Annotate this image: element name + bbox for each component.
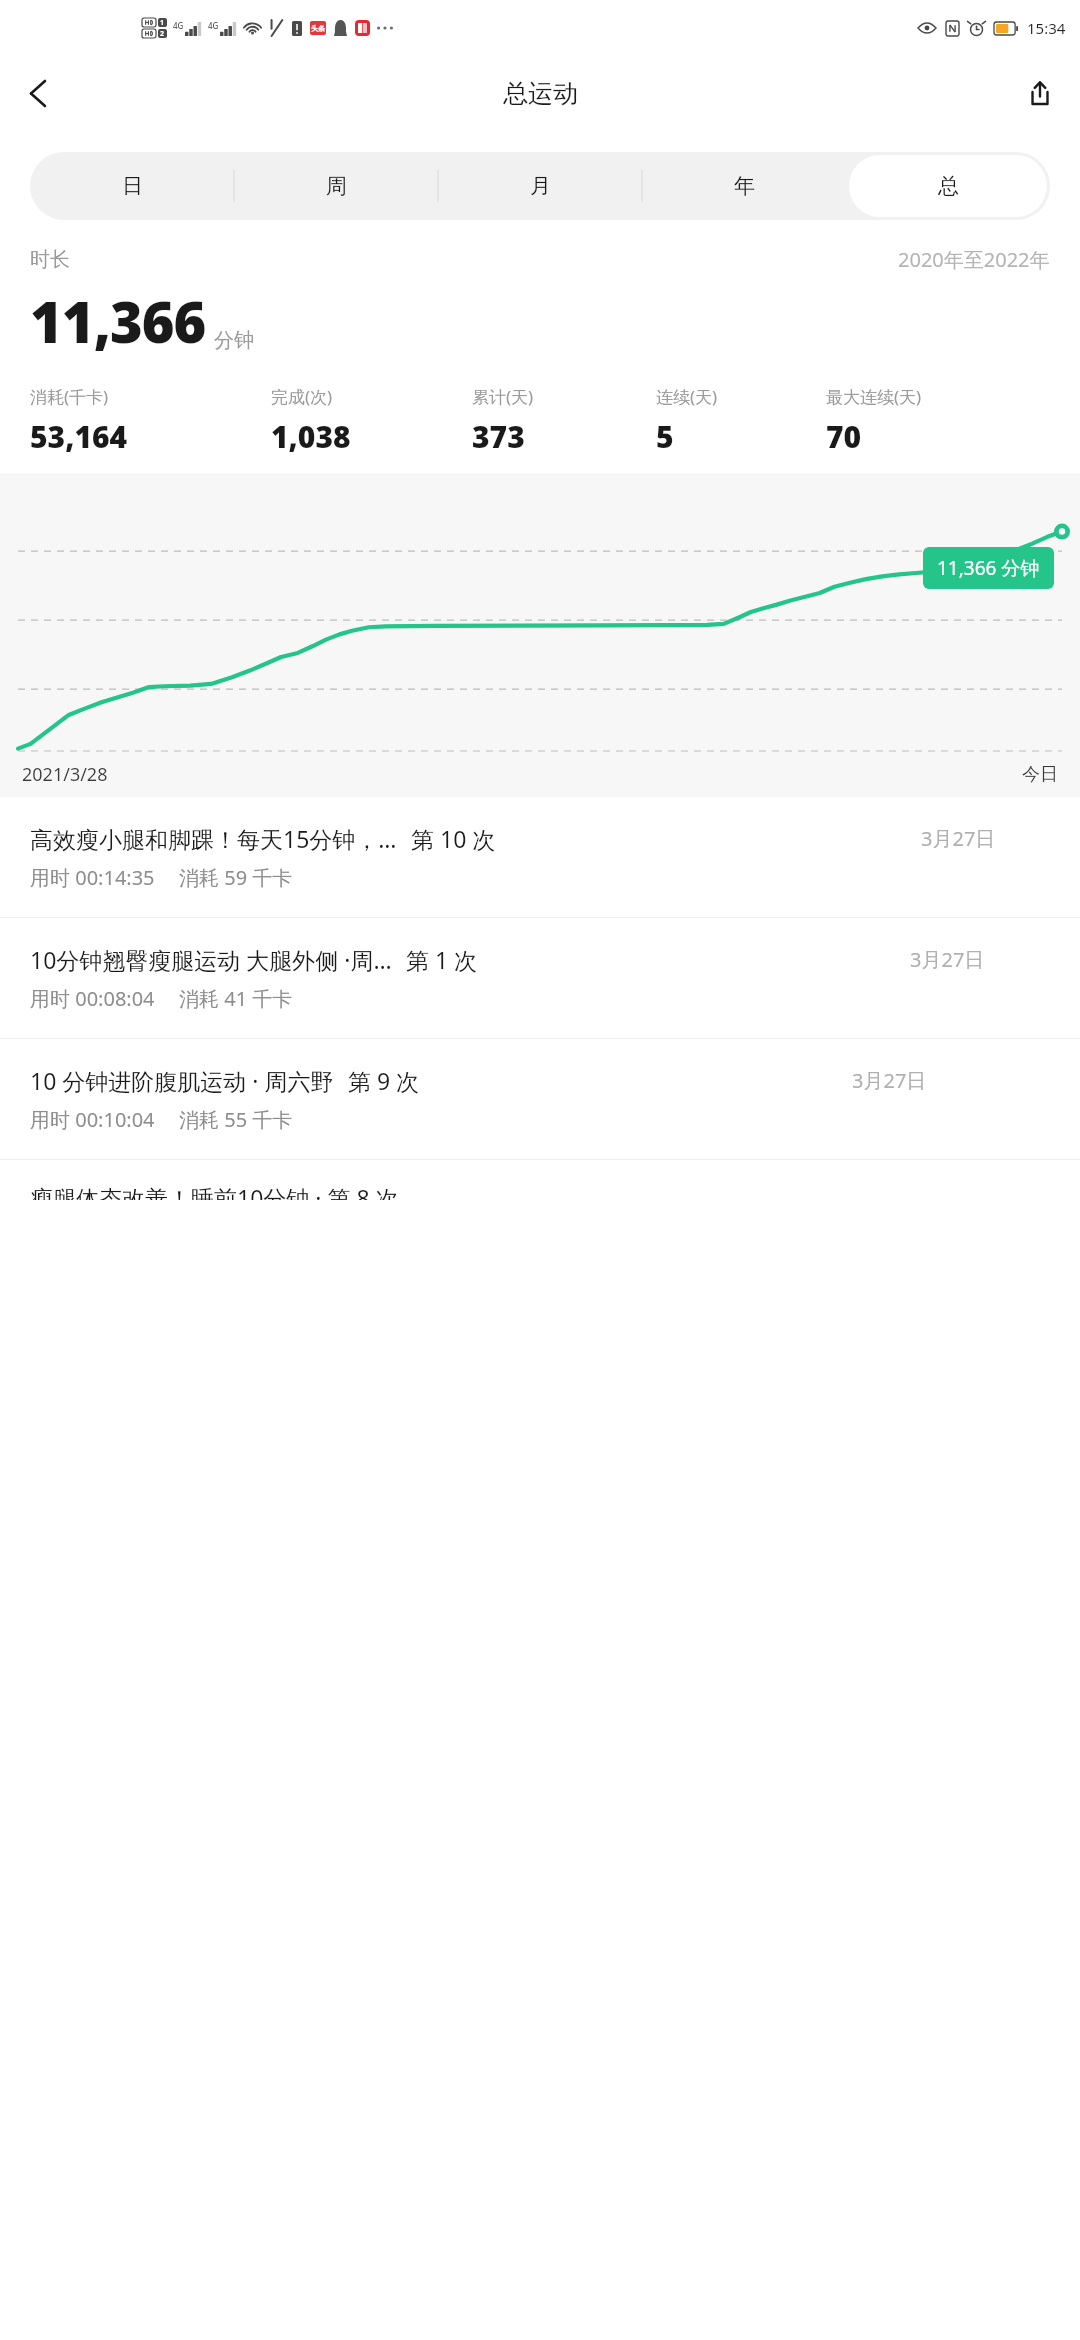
staticText: 时长 [30, 247, 70, 272]
button[interactable]: 总 [849, 155, 1047, 217]
staticText: 15:34 [1027, 18, 1066, 38]
staticText: 第 1 次 [406, 944, 478, 975]
button[interactable]: 周 [237, 155, 435, 217]
staticText: 1,038 [271, 416, 351, 457]
button[interactable]: 高效瘦小腿和脚踝！每天15分钟，… [0, 797, 1080, 917]
button[interactable]: Back [12, 67, 64, 119]
staticText: 4G [173, 20, 184, 31]
staticText: 3月27日 [852, 1067, 927, 1094]
staticText: 2021/3/28 [22, 762, 108, 787]
staticText: 11,366 分钟 [937, 555, 1040, 581]
staticText: 消耗 41 千卡 [179, 985, 293, 1012]
button[interactable]: 10 分钟进阶腹肌运动 · 周六野 [0, 1039, 1080, 1159]
staticText: 日 [122, 173, 143, 199]
button[interactable]: 10分钟翘臀瘦腿运动 大腿外侧 ·周… [0, 918, 1080, 1038]
staticText: 最大连续(天) [826, 385, 922, 408]
staticText: 总 [938, 173, 959, 199]
staticText: 4G [208, 20, 219, 31]
staticText: 消耗 55 千卡 [179, 1106, 293, 1133]
staticText: 累计(天) [472, 385, 534, 408]
staticText: 连续(天) [656, 385, 718, 408]
staticText: 2 [160, 29, 165, 38]
staticText: 总运动 [503, 78, 578, 109]
button[interactable]: 年 [645, 155, 843, 217]
staticText: 高效瘦小腿和脚踝！每天15分钟，… [30, 823, 397, 854]
staticText: 1 [160, 18, 165, 27]
staticText: 月 [530, 173, 551, 199]
staticText: 周 [326, 173, 347, 199]
staticText: 头条 [311, 24, 325, 33]
staticText: 消耗(千卡) [30, 385, 109, 408]
staticText: 今日 [1022, 763, 1058, 786]
staticText: 第 9 次 [348, 1065, 420, 1096]
staticText: 用时 00:08:04 [30, 985, 155, 1012]
staticText: 53,164 [30, 416, 128, 457]
staticText: 年 [734, 173, 755, 199]
staticText: 3月27日 [910, 946, 985, 973]
staticText: 11,366 [30, 283, 206, 359]
button[interactable]: 月 [441, 155, 639, 217]
staticText: 2020年至2022年 [898, 246, 1050, 273]
staticText: 5 [656, 416, 674, 457]
staticText: 373 [472, 416, 525, 457]
staticText: 用时 00:14:35 [30, 864, 155, 891]
staticText: 瘦腿体态改善！睡前10分钟 · 第 8 次 [30, 1182, 399, 1200]
staticText: 3月27日 [921, 825, 996, 852]
button[interactable]: 日 [33, 155, 231, 217]
staticText: 10分钟翘臀瘦腿运动 大腿外侧 ·周… [30, 944, 392, 975]
button[interactable]: Share [1014, 67, 1066, 119]
staticText: 完成(次) [271, 385, 333, 408]
staticText: 分钟 [214, 328, 254, 353]
staticText: 用时 00:10:04 [30, 1106, 155, 1133]
staticText: 70 [826, 416, 862, 457]
staticText: 消耗 59 千卡 [179, 864, 293, 891]
staticText: 第 10 次 [411, 823, 496, 854]
staticText: 10 分钟进阶腹肌运动 · 周六野 [30, 1065, 334, 1096]
